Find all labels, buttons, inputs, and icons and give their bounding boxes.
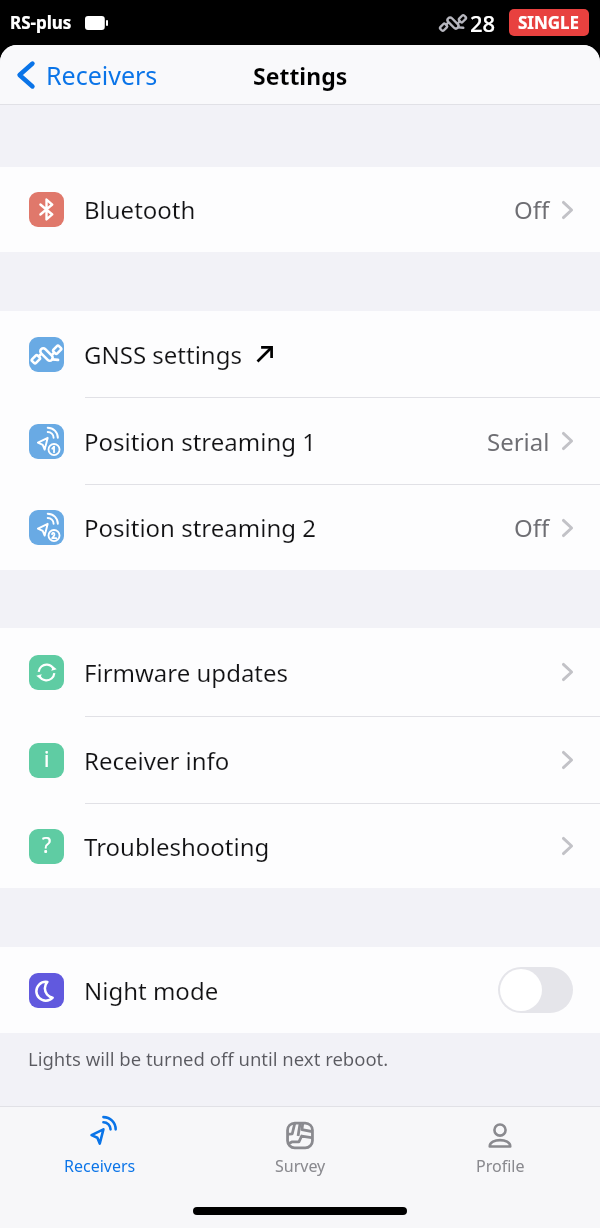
staticText: GNSS settings [84,338,242,371]
button[interactable]: Night mode toggle [498,967,573,1013]
button[interactable]: Position streaming 2 [0,485,600,570]
staticText: Settings [253,60,348,91]
staticText: Position streaming 2 [84,511,316,544]
button[interactable]: Survey [200,1107,400,1187]
staticText: 28 [470,8,496,38]
staticText: Night mode [84,974,219,1007]
staticText: Profile [476,1155,525,1177]
staticText: Firmware updates [84,656,289,689]
staticText: Lights will be turned off until next reb… [28,1046,389,1071]
button[interactable]: Firmware updates [0,628,600,716]
staticText: Off [514,193,550,226]
staticText: RS-plus [10,11,72,34]
button[interactable]: SINGLE [518,11,580,34]
staticText: Receivers [46,58,158,92]
staticText: SINGLE [518,11,580,34]
staticText: ? [42,831,52,860]
button[interactable]: Bluetooth [0,167,600,252]
button[interactable]: Position streaming 1 [0,398,600,484]
button[interactable]: Profile [400,1107,600,1187]
staticText: Position streaming 1 [84,425,316,458]
button[interactable]: Receivers [0,1107,200,1187]
staticText: Serial [487,425,550,458]
staticText: Bluetooth [84,193,196,226]
staticText: Receiver info [84,744,230,777]
staticText: Survey [275,1155,326,1177]
staticText: Receivers [64,1155,136,1177]
staticText: i [44,745,50,774]
button[interactable]: Receivers [17,45,584,105]
staticText: Off [514,511,550,544]
button[interactable]: Night mode [0,947,600,1033]
button[interactable]: ? [0,804,600,888]
staticText: Troubleshooting [84,830,270,863]
button[interactable]: i [0,717,600,803]
button[interactable]: GNSS settings [0,311,600,397]
